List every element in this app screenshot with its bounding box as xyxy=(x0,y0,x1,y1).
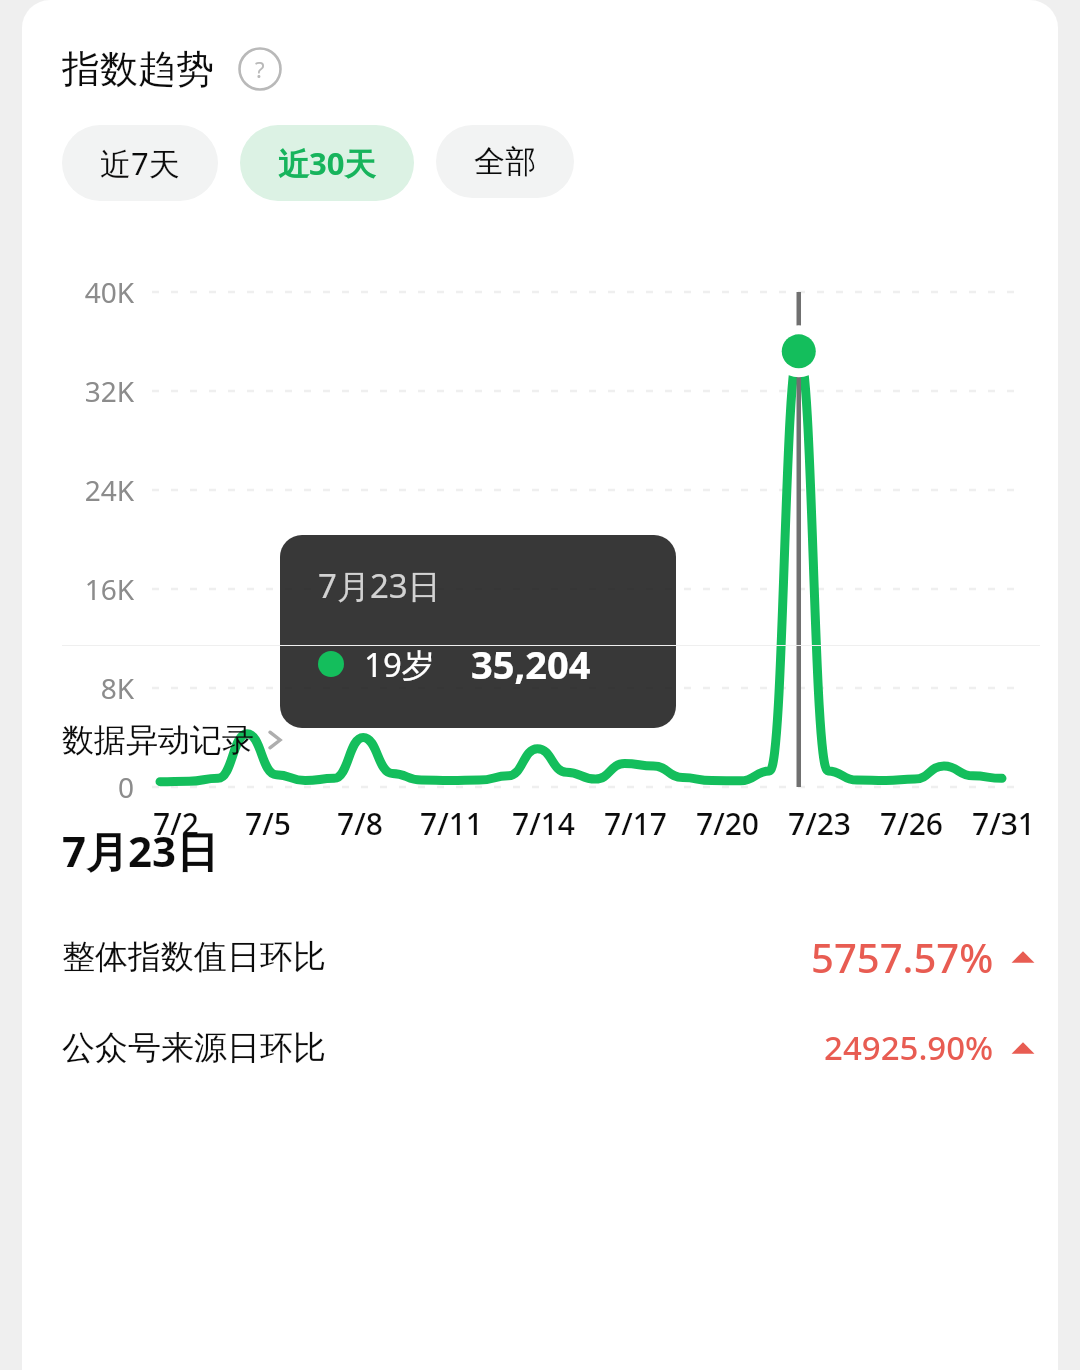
staticText: 19岁 xyxy=(364,642,435,687)
staticText: 7/23 xyxy=(788,803,852,844)
staticText: 7/26 xyxy=(880,803,944,844)
staticText: 5757.57% xyxy=(811,930,994,984)
staticText: 近7天 xyxy=(100,142,180,184)
staticText: 全部 xyxy=(474,142,536,181)
staticText: 7月23日 xyxy=(318,563,441,608)
staticText: 16K xyxy=(40,570,134,608)
staticText: 整体指数值日环比 xyxy=(62,936,326,978)
button[interactable]: 近7天 xyxy=(62,125,218,201)
staticText: ? xyxy=(255,54,265,84)
staticText: 24925.90% xyxy=(824,1025,994,1070)
staticText: 7/17 xyxy=(604,803,668,844)
staticText: 近30天 xyxy=(278,142,376,184)
button[interactable]: 帮助说明 xyxy=(238,47,282,91)
button[interactable]: 全部 xyxy=(436,125,574,198)
staticText: 7/8 xyxy=(337,803,383,844)
staticText: 7/11 xyxy=(420,803,484,844)
staticText: 指数趋势 xyxy=(62,45,214,93)
button[interactable]: 整体指数值日环比 xyxy=(62,930,1036,984)
button[interactable]: 公众号来源日环比 xyxy=(62,1025,1036,1070)
staticText: 7/31 xyxy=(972,803,1036,844)
staticText: 8K xyxy=(40,669,134,707)
staticText: 7月23日 xyxy=(62,822,219,879)
staticText: 数据异动记录 xyxy=(62,720,254,760)
staticText: 公众号来源日环比 xyxy=(62,1027,326,1069)
staticText: 40K xyxy=(40,273,134,311)
staticText: 7/2 xyxy=(153,803,199,844)
staticText: 35,204 xyxy=(471,638,591,690)
staticText: 7/5 xyxy=(245,803,291,844)
button[interactable]: 近30天 xyxy=(240,125,414,201)
staticText: 32K xyxy=(40,372,134,410)
staticText: 0 xyxy=(40,768,134,806)
button[interactable]: 数据异动记录 xyxy=(62,720,284,760)
staticText: 7/20 xyxy=(696,803,760,844)
staticText: 24K xyxy=(40,471,134,509)
staticText: 7/14 xyxy=(512,803,576,844)
